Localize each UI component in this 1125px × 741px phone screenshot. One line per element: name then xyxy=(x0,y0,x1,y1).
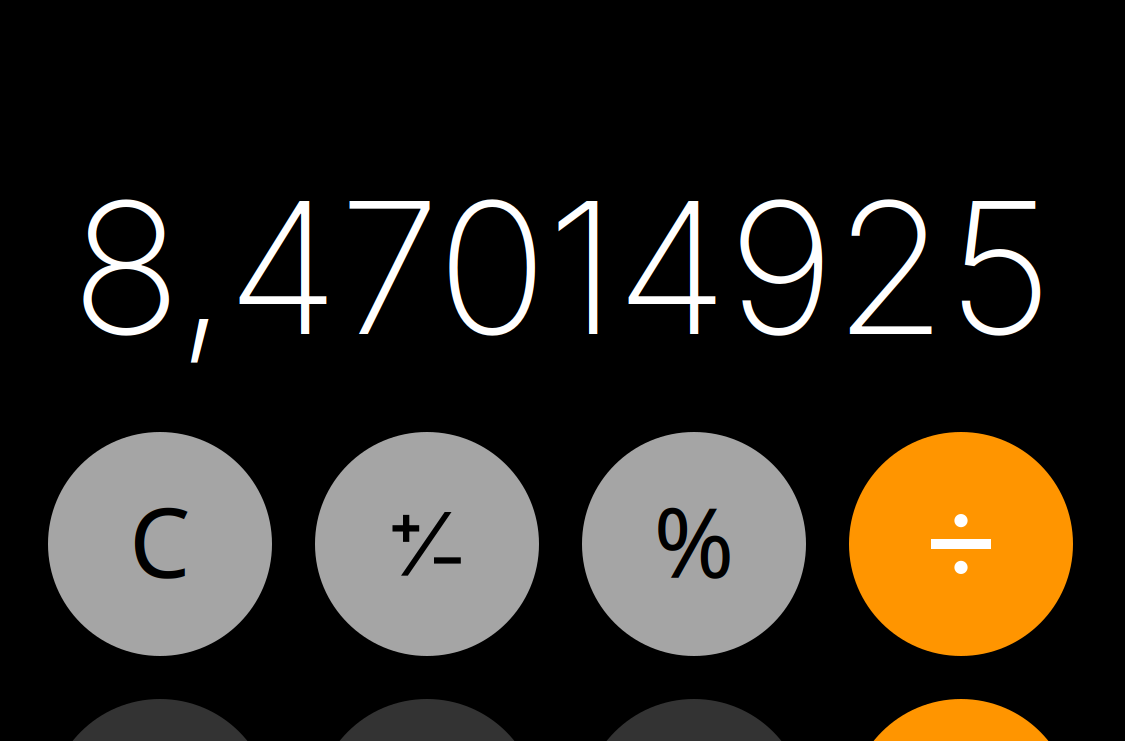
button[interactable]: Plus minus xyxy=(315,432,539,656)
button[interactable]: Divide xyxy=(849,432,1073,656)
button[interactable]: Multiply xyxy=(849,699,1073,741)
button[interactable]: 7 xyxy=(48,699,272,741)
button[interactable]: % xyxy=(582,432,806,656)
button[interactable]: 9 xyxy=(582,699,806,741)
button[interactable]: C xyxy=(48,432,272,656)
staticText: C xyxy=(129,475,191,605)
staticText: % xyxy=(653,475,734,605)
button[interactable]: 8 xyxy=(315,699,539,741)
staticText: 8,47014925 xyxy=(71,157,1053,378)
